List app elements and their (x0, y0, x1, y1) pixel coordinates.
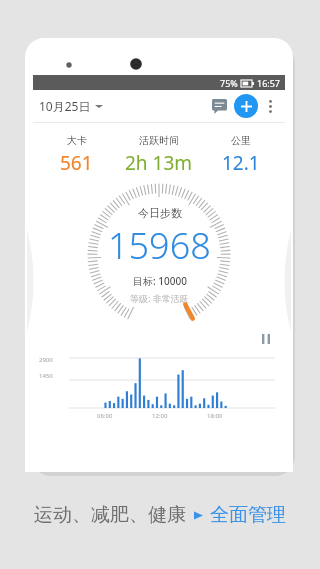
staticText: 12.1 (222, 150, 260, 176)
button[interactable]: Messages (206, 93, 232, 119)
staticText: 公里 (231, 134, 251, 147)
staticText: 今日步数 (138, 206, 182, 220)
staticText: 运动、减肥、健康 (34, 503, 186, 527)
staticText: 等级: 非常活跃 (130, 292, 189, 304)
staticText: 12:00 (152, 412, 168, 420)
staticText: 18:00 (207, 412, 223, 420)
staticText: 目标: 10000 (133, 274, 187, 288)
button[interactable]: 10月25日 (39, 98, 103, 114)
staticText: 06:00 (97, 412, 113, 420)
staticText: 1450 (39, 372, 53, 380)
staticText: 75% (220, 77, 238, 89)
button[interactable]: 运动、减肥、健康 (0, 503, 320, 527)
staticText: 10月25日 (39, 98, 91, 114)
button[interactable]: 今日步数 (33, 180, 285, 330)
button[interactable]: 大卡 (41, 134, 112, 176)
button[interactable]: More options (259, 95, 281, 117)
button[interactable]: 活跃时间 (112, 134, 205, 176)
staticText: 活跃时间 (139, 134, 179, 147)
button[interactable]: 公里 (205, 134, 277, 176)
staticText: 全面管理 (210, 503, 286, 527)
staticText: 15968 (108, 221, 211, 270)
staticText: 2900 (39, 356, 53, 364)
staticText: 2h 13m (125, 150, 193, 176)
staticText: 大卡 (67, 134, 87, 147)
staticText: 16:57 (257, 77, 281, 89)
button[interactable]: Pause (257, 330, 275, 348)
staticText: 561 (60, 150, 93, 176)
button[interactable]: Add (234, 94, 258, 118)
